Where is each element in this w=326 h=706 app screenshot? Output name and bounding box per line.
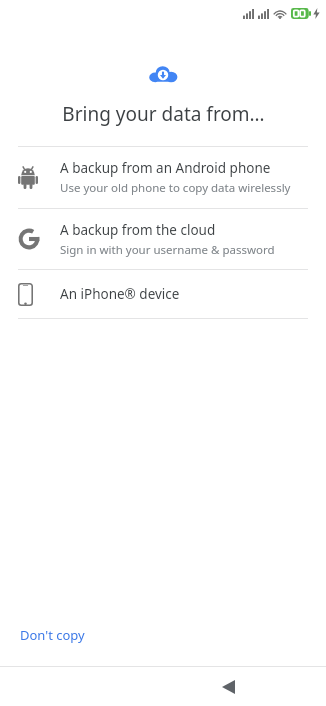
button[interactable]: Back: [214, 673, 242, 701]
button[interactable]: Don't copy: [12, 620, 93, 650]
staticText: Use your old phone to copy data wireless…: [60, 180, 291, 196]
staticText: Sign in with your username & password: [60, 242, 275, 258]
staticText: An iPhone® device: [60, 285, 180, 303]
staticText: Don't copy: [20, 626, 85, 644]
staticText: Bring your data from…: [62, 101, 265, 127]
staticText: A backup from an Android phone: [60, 159, 271, 177]
button[interactable]: A backup from an Android phone: [0, 147, 326, 208]
button[interactable]: An iPhone® device: [0, 270, 326, 318]
staticText: A backup from the cloud: [60, 221, 216, 239]
button[interactable]: A backup from the cloud: [0, 209, 326, 269]
